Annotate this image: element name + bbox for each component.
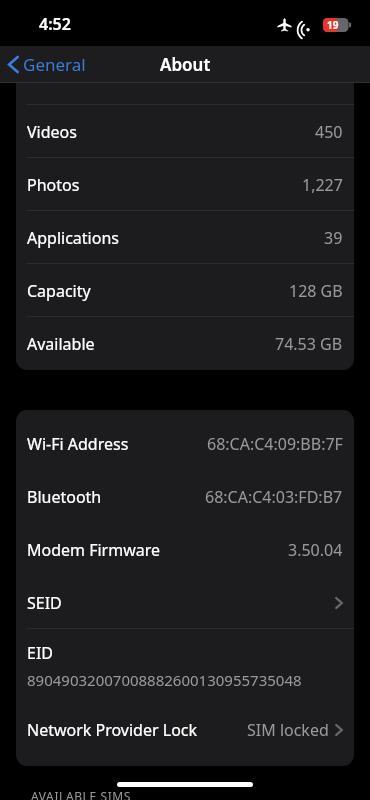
button[interactable]: Photos <box>16 158 354 211</box>
button[interactable]: General <box>0 49 92 80</box>
staticText: 68:CA:C4:09:BB:7F <box>207 433 343 455</box>
staticText: SIM locked <box>247 719 329 741</box>
staticText: Available <box>27 333 95 355</box>
staticText: 128 GB <box>289 280 343 302</box>
other: Open <box>335 596 343 610</box>
other: Open <box>335 723 343 737</box>
staticText: General <box>23 53 86 76</box>
staticText: 3.50.04 <box>288 539 343 561</box>
staticText: 1,227 <box>302 174 343 196</box>
staticText: Bluetooth <box>27 486 102 508</box>
staticText: Videos <box>27 121 77 143</box>
staticText: 68:CA:C4:03:FD:B7 <box>205 486 343 508</box>
button[interactable]: Available <box>16 317 354 370</box>
staticText: Applications <box>27 227 119 249</box>
staticText: 39 <box>324 227 343 249</box>
staticText: 450 <box>315 121 343 143</box>
button[interactable]: Modem Firmware <box>16 523 354 576</box>
staticText: Wi-Fi Address <box>27 433 129 455</box>
button[interactable]: EID <box>16 629 354 703</box>
staticText: 74.53 GB <box>275 333 343 355</box>
button[interactable]: Capacity <box>16 264 354 317</box>
staticText: Capacity <box>27 280 91 302</box>
button[interactable]: Bluetooth <box>16 470 354 523</box>
button[interactable]: Applications <box>16 211 354 264</box>
button[interactable]: Videos <box>16 105 354 158</box>
staticText: 19 <box>327 18 339 32</box>
button[interactable]: Network Provider Lock <box>16 703 354 756</box>
staticText: About <box>160 53 211 76</box>
staticText: EID <box>27 642 54 664</box>
staticText: Network Provider Lock <box>27 719 198 741</box>
button[interactable]: Wi-Fi Address <box>16 417 354 470</box>
staticText: 4:52 <box>39 13 71 35</box>
staticText: AVAILABLE SIMS <box>31 788 132 800</box>
staticText: 89049032007008882600130955735048 <box>27 670 302 690</box>
staticText: Photos <box>27 174 80 196</box>
staticText: Modem Firmware <box>27 539 161 561</box>
button[interactable]: SEID <box>16 576 354 629</box>
staticText: SEID <box>27 592 62 614</box>
